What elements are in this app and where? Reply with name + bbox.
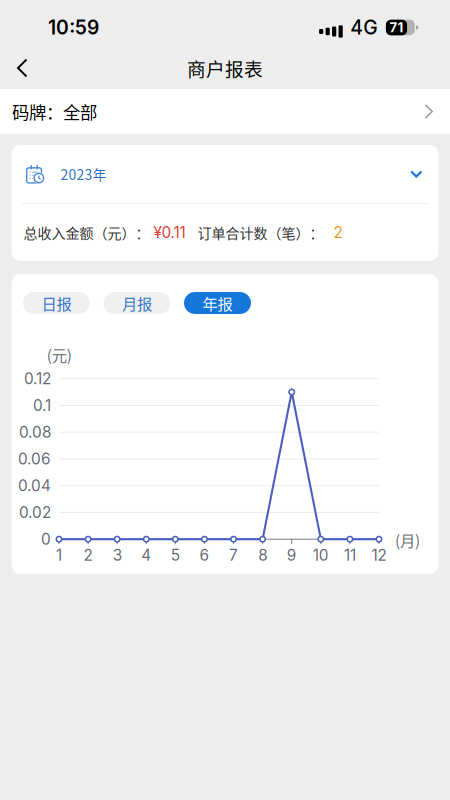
staticText: 71 [389,19,403,35]
staticText: 0.1 [33,396,51,415]
staticText: 商户报表 [187,54,263,81]
button[interactable]: 月报 [103,292,170,314]
staticText: 0.08 [19,423,51,441]
staticText: 0.06 [18,450,51,468]
staticText: 2 [84,546,93,564]
button[interactable]: 年报 [184,292,251,314]
button[interactable]: 2023年 [11,145,438,203]
staticText: 7 [229,546,238,564]
staticText: 10 [313,546,329,564]
staticText: 4 [141,546,151,564]
staticText: 0.12 [24,369,51,388]
staticText: 月报 [122,292,152,314]
staticText: 日报 [41,292,71,314]
staticText: 6 [199,546,209,564]
staticText: (元) [47,343,72,366]
staticText: 1 [56,546,62,564]
staticText: 9 [287,546,297,564]
staticText: 码牌：全部 [12,99,97,124]
staticText: 11 [344,546,356,564]
staticText: 8 [258,546,267,564]
staticText: 订单合计数（笔）： [197,222,323,243]
staticText: 4G [350,16,377,39]
button[interactable]: 日报 [23,292,90,314]
staticText: 总收入金额（元）： [23,222,149,243]
staticText: 年报 [202,292,232,314]
button[interactable]: 码牌：全部 [0,89,450,134]
staticText: 12 [371,546,386,564]
staticText: ¥0.11 [153,223,185,242]
staticText: 3 [113,546,122,564]
staticText: 5 [171,546,180,564]
staticText: (月) [395,529,420,551]
staticText: 10:59 [48,16,99,39]
staticText: 2023年 [60,164,106,184]
staticText: 0.02 [19,503,51,522]
staticText: 2 [333,223,342,242]
button[interactable]: 返回 [0,47,44,89]
staticText: 0 [41,530,51,548]
staticText: 0.04 [18,476,51,495]
